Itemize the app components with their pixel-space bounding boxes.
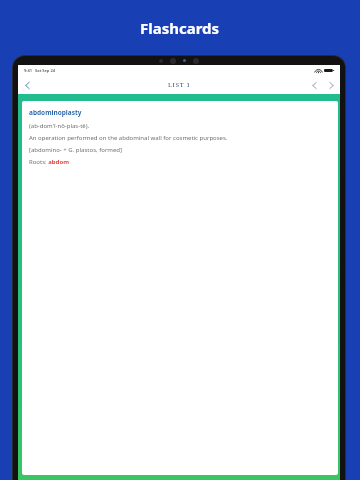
button[interactable]: Next card [325, 79, 338, 92]
button[interactable]: Previous card [308, 79, 321, 92]
staticText: abdominoplasty [29, 108, 82, 117]
button[interactable]: Back [20, 78, 34, 92]
staticText: LIST 1 [168, 81, 191, 89]
staticText: Roots: abdom [29, 158, 69, 166]
staticText: [abdomino- + G. plastos, formed] [29, 146, 123, 154]
staticText: (ab-dom'ĭ-nō-plas-tē), [29, 122, 90, 130]
staticText: 9:41 Sat Sep 24 [24, 68, 55, 73]
button[interactable]: abdominoplasty [22, 101, 338, 475]
staticText: An operation performed on the abdominal … [29, 134, 228, 142]
staticText: Flashcards [140, 18, 220, 38]
